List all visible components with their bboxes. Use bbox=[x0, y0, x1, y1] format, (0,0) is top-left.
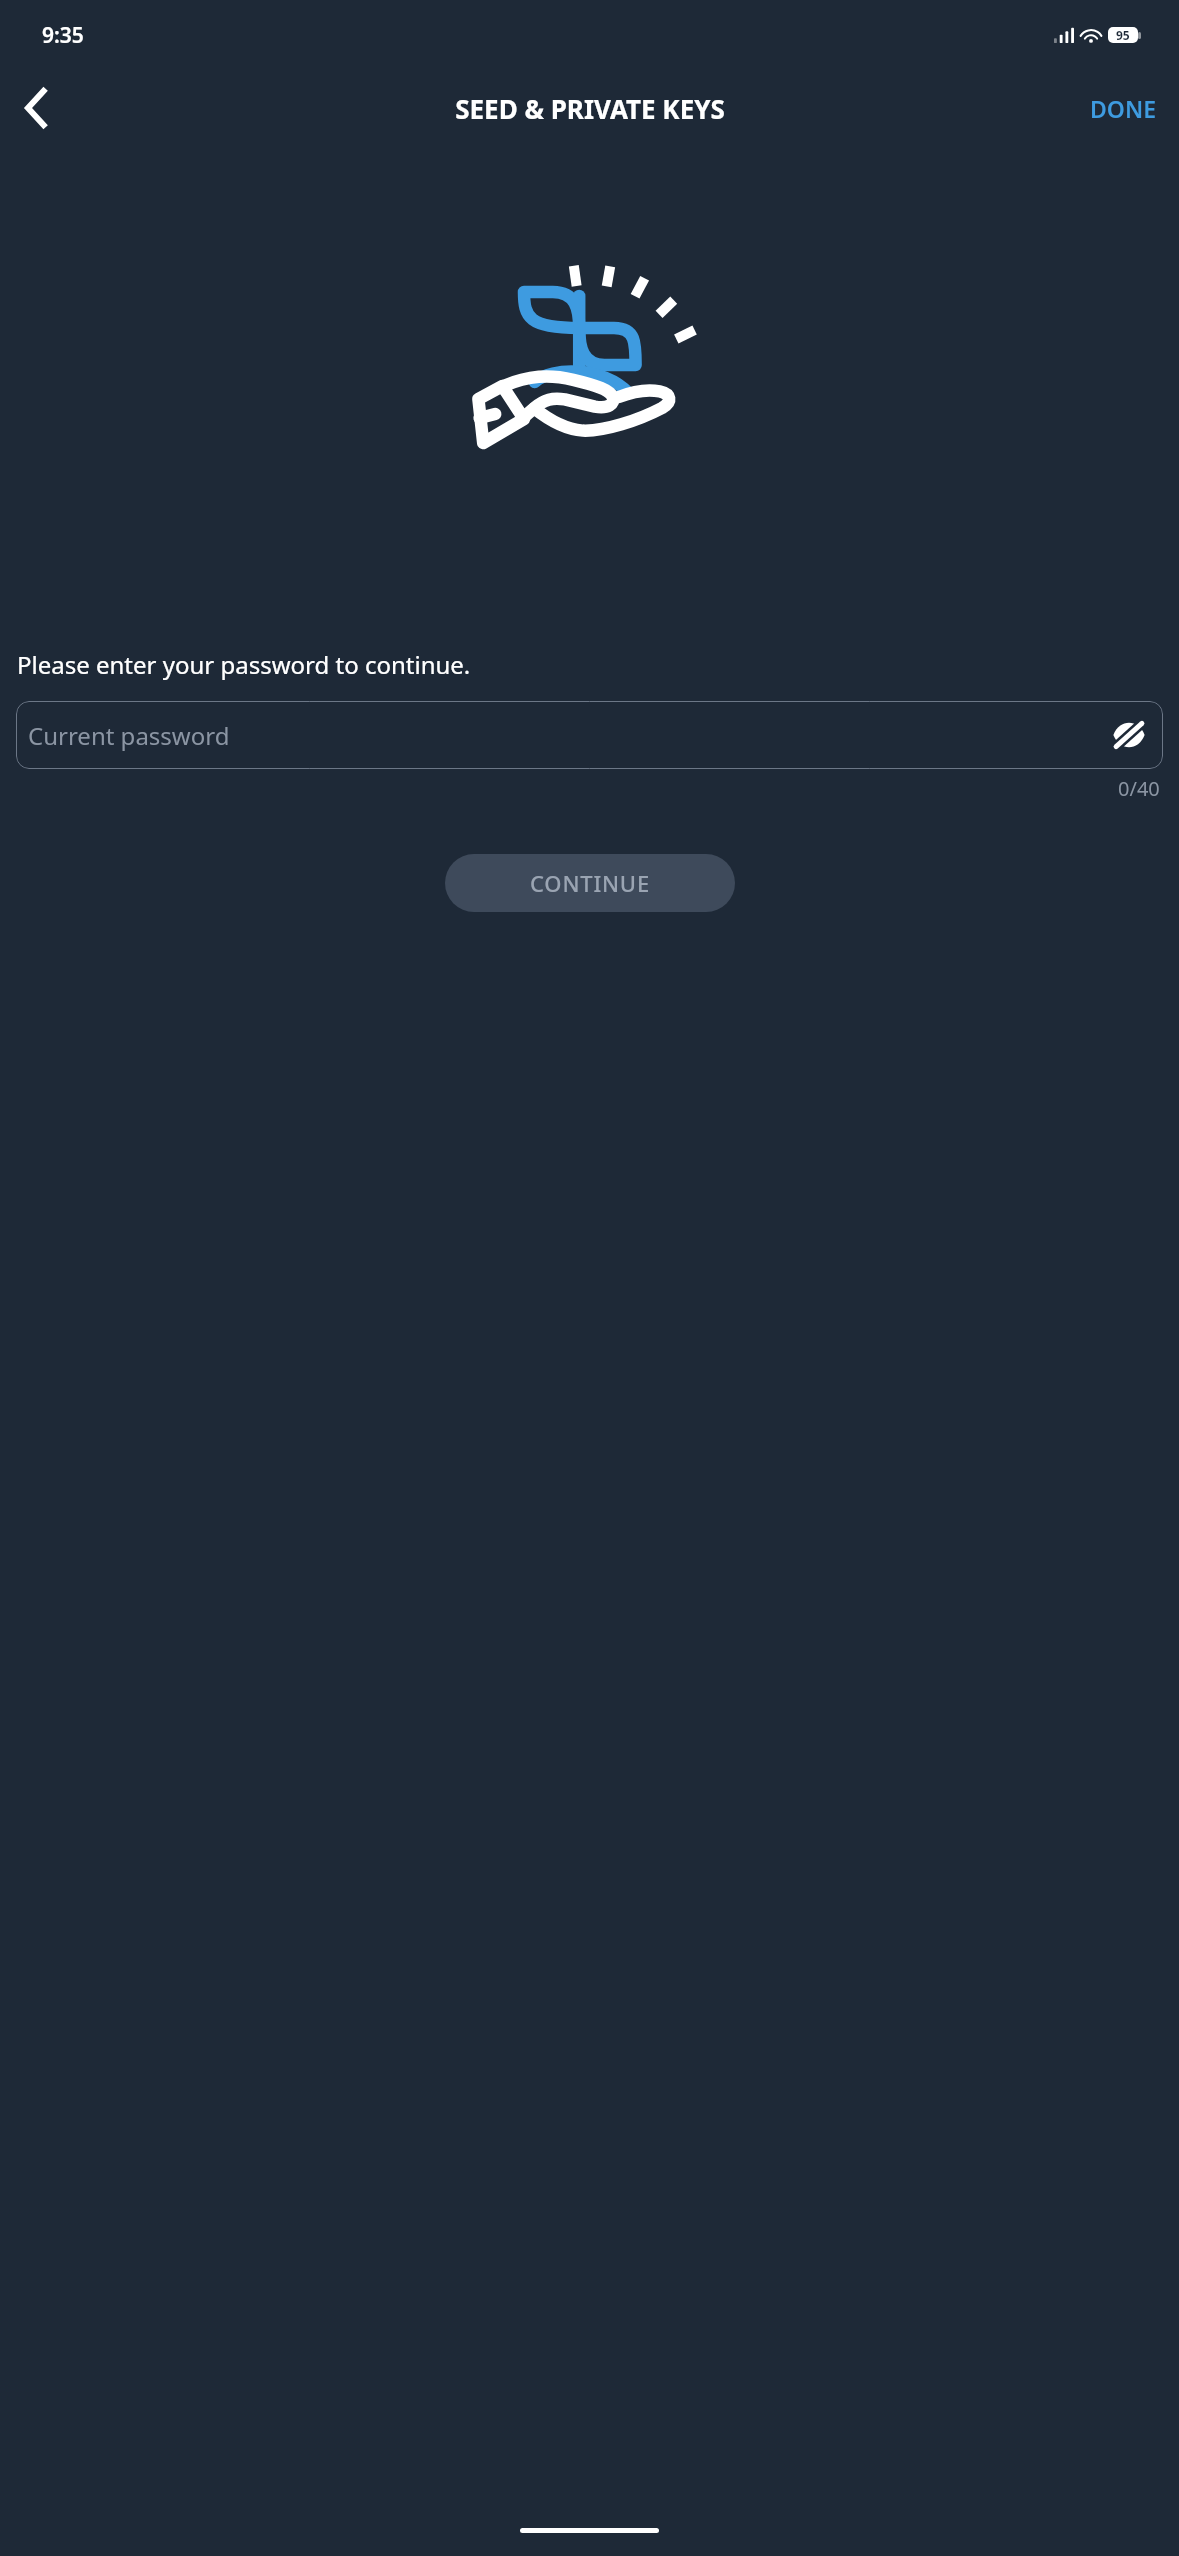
staticText: 0/40 bbox=[1118, 775, 1160, 802]
button[interactable]: DONE bbox=[1068, 79, 1179, 138]
button[interactable]: Show password bbox=[1103, 709, 1155, 761]
staticText: Current password bbox=[28, 719, 230, 752]
button[interactable]: Current password bbox=[16, 701, 1163, 769]
staticText: Please enter your password to continue. bbox=[17, 648, 471, 681]
staticText: DONE bbox=[1090, 93, 1157, 124]
staticText: 95 bbox=[1116, 27, 1130, 43]
staticText: SEED & PRIVATE KEYS bbox=[455, 91, 725, 126]
staticText: 9:35 bbox=[42, 21, 84, 50]
staticText: CONTINUE bbox=[530, 868, 650, 898]
button[interactable]: Back bbox=[6, 78, 66, 138]
button[interactable]: CONTINUE bbox=[445, 854, 735, 912]
